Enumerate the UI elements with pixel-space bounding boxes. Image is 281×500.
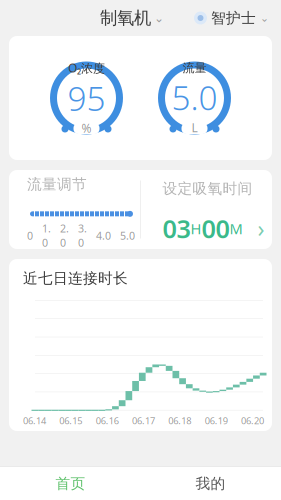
staticText: L — [191, 119, 197, 135]
staticText: 我的 — [195, 474, 225, 492]
button[interactable]: 制氧机 — [96, 1, 168, 35]
staticText: 智护士 — [211, 9, 256, 27]
staticText: 06.18 — [168, 414, 191, 427]
staticText: 5.0 — [171, 75, 217, 120]
staticText: 06.20 — [241, 414, 264, 427]
staticText: 流量 — [182, 60, 206, 75]
staticText: 4.0 — [96, 228, 111, 243]
staticText: 制氧机 — [100, 7, 151, 29]
staticText: 06.17 — [132, 414, 155, 427]
staticText: 00 — [201, 212, 229, 245]
staticText: ⌄ — [154, 11, 164, 25]
staticText: % — [81, 120, 91, 136]
staticText: 设定吸氧时间 — [162, 180, 252, 198]
staticText: 3.0 — [78, 221, 87, 250]
staticText: 首页 — [55, 474, 85, 492]
staticText: 06.14 — [23, 414, 46, 427]
staticText: 0 — [27, 228, 33, 243]
button[interactable]: 我的 — [140, 467, 280, 500]
staticText: 2.0 — [60, 221, 69, 250]
button[interactable]: 首页 — [0, 467, 140, 500]
staticText: 5.0 — [120, 228, 135, 243]
staticText: H — [190, 219, 201, 238]
staticText: › — [257, 213, 264, 244]
button[interactable]: 智护士 — [190, 3, 273, 33]
staticText: 06.19 — [205, 414, 228, 427]
staticText: 06.16 — [96, 414, 119, 427]
staticText: ⌄ — [260, 12, 269, 24]
staticText: M — [229, 219, 242, 238]
staticText: 03 — [162, 212, 190, 245]
staticText: 1.0 — [42, 221, 51, 250]
button[interactable]: 设定吸氧时间 — [141, 170, 272, 249]
staticText: 06.15 — [59, 414, 82, 427]
staticText: 流量调节 — [27, 175, 87, 193]
staticText: 近七日连接时长 — [23, 269, 128, 287]
staticText: O₂浓度 — [68, 60, 105, 76]
staticText: 95 — [67, 76, 105, 120]
